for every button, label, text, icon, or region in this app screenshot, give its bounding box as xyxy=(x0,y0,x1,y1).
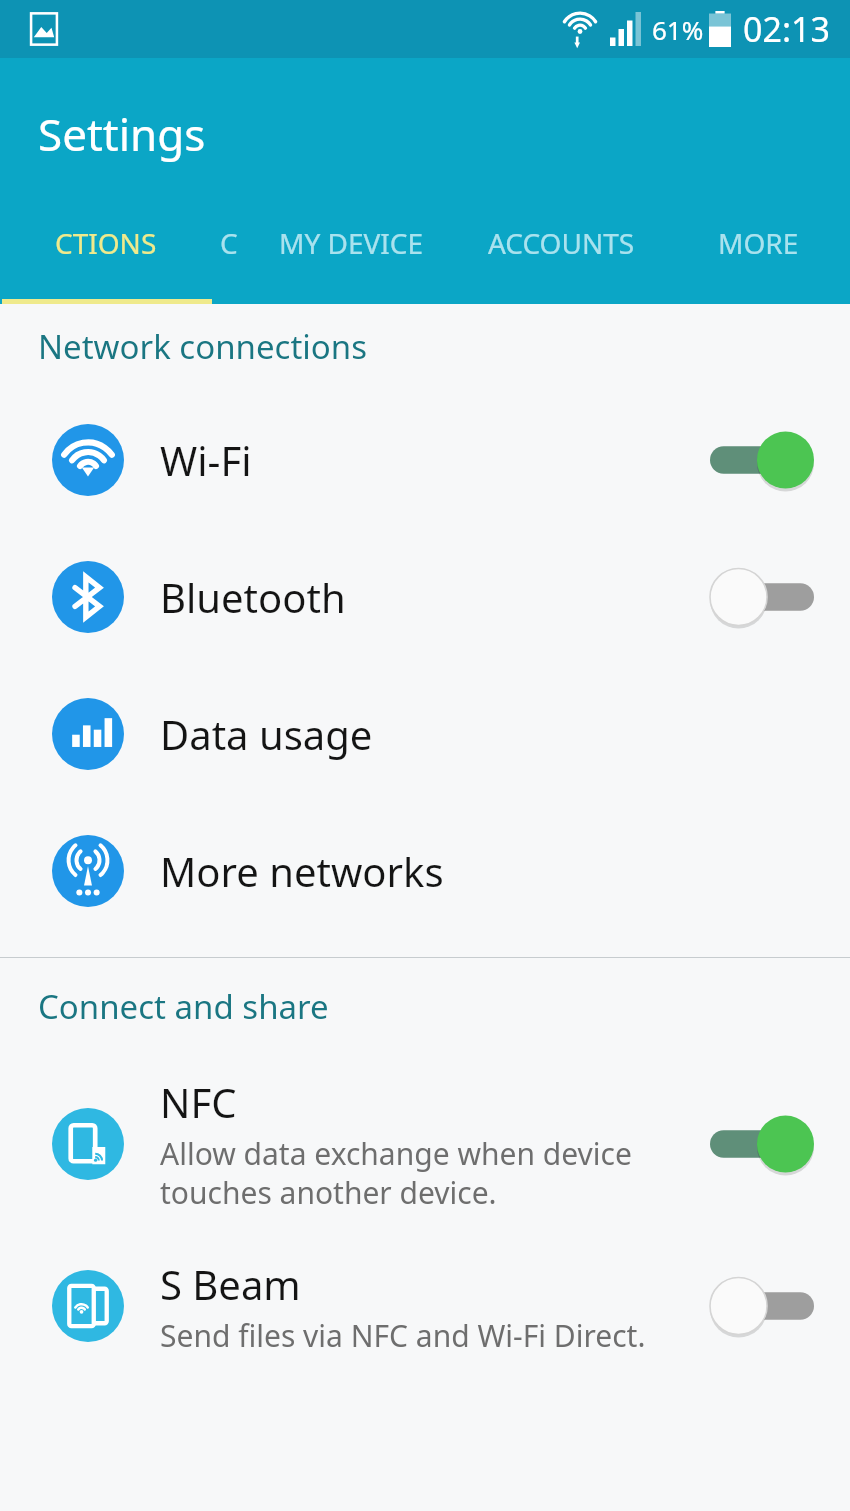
staticText: CTIONS xyxy=(55,224,157,262)
button[interactable]: Bluetooth xyxy=(0,528,850,665)
button[interactable]: On xyxy=(710,429,814,491)
staticText: More networks xyxy=(160,844,444,898)
button[interactable]: More networks xyxy=(0,802,850,939)
staticText: S Beam xyxy=(160,1257,301,1311)
staticText: MY DEVICE xyxy=(279,224,424,262)
staticText: Wi-Fi xyxy=(160,433,252,487)
staticText: Bluetooth xyxy=(160,570,346,624)
button[interactable]: ACCOUNTS xyxy=(456,210,666,304)
button[interactable]: Wi-Fi xyxy=(0,391,850,528)
staticText: MORE xyxy=(718,224,799,262)
button[interactable]: C xyxy=(212,210,246,304)
staticText: NFC xyxy=(160,1075,237,1129)
staticText: Network connections xyxy=(38,324,367,369)
staticText: Settings xyxy=(38,104,206,164)
staticText: Allow data exchange when device touches … xyxy=(160,1133,632,1212)
button[interactable]: Data usage xyxy=(0,665,850,802)
staticText: C xyxy=(220,224,238,262)
button[interactable]: S Beam xyxy=(0,1232,850,1380)
button[interactable]: MY DEVICE xyxy=(246,210,456,304)
staticText: Connect and share xyxy=(38,984,329,1029)
button[interactable]: NFC xyxy=(0,1055,850,1232)
button[interactable]: Off xyxy=(710,566,814,628)
button[interactable]: Off xyxy=(710,1275,814,1337)
staticText: ACCOUNTS xyxy=(488,224,635,262)
button[interactable]: MORE xyxy=(666,210,850,304)
button[interactable]: CTIONS xyxy=(0,210,212,304)
staticText: 02:13 xyxy=(743,6,830,52)
button[interactable]: On xyxy=(710,1113,814,1175)
staticText: Data usage xyxy=(160,707,373,761)
staticText: Send files via NFC and Wi-Fi Direct. xyxy=(160,1315,646,1356)
staticText: 61% xyxy=(652,12,704,47)
